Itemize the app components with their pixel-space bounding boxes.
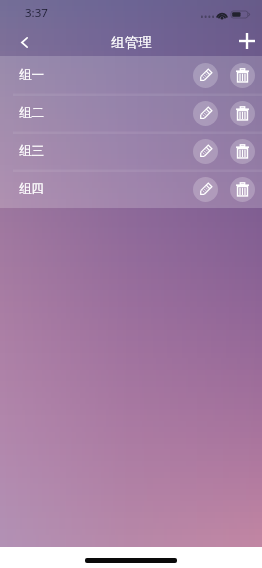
button[interactable]: 组二 — [0, 94, 262, 132]
button[interactable]: 组一 — [0, 56, 262, 94]
button[interactable]: Delete group — [230, 63, 255, 88]
button[interactable]: Delete group — [230, 101, 255, 126]
staticText: 组一 — [19, 67, 45, 83]
button[interactable]: Add group — [230, 24, 262, 56]
staticText: 组三 — [19, 143, 45, 159]
button[interactable]: Back — [8, 24, 40, 56]
button[interactable]: 组四 — [0, 170, 262, 208]
button[interactable]: Edit group — [193, 177, 218, 202]
staticText: 3:37 — [25, 5, 48, 21]
button[interactable]: Edit group — [193, 139, 218, 164]
button[interactable]: Delete group — [230, 177, 255, 202]
button[interactable]: Delete group — [230, 139, 255, 164]
button[interactable]: Edit group — [193, 63, 218, 88]
staticText: 组管理 — [111, 34, 152, 51]
button[interactable]: Edit group — [193, 101, 218, 126]
staticText: 组二 — [19, 105, 45, 121]
staticText: 组四 — [19, 181, 45, 197]
button[interactable]: 组三 — [0, 132, 262, 170]
